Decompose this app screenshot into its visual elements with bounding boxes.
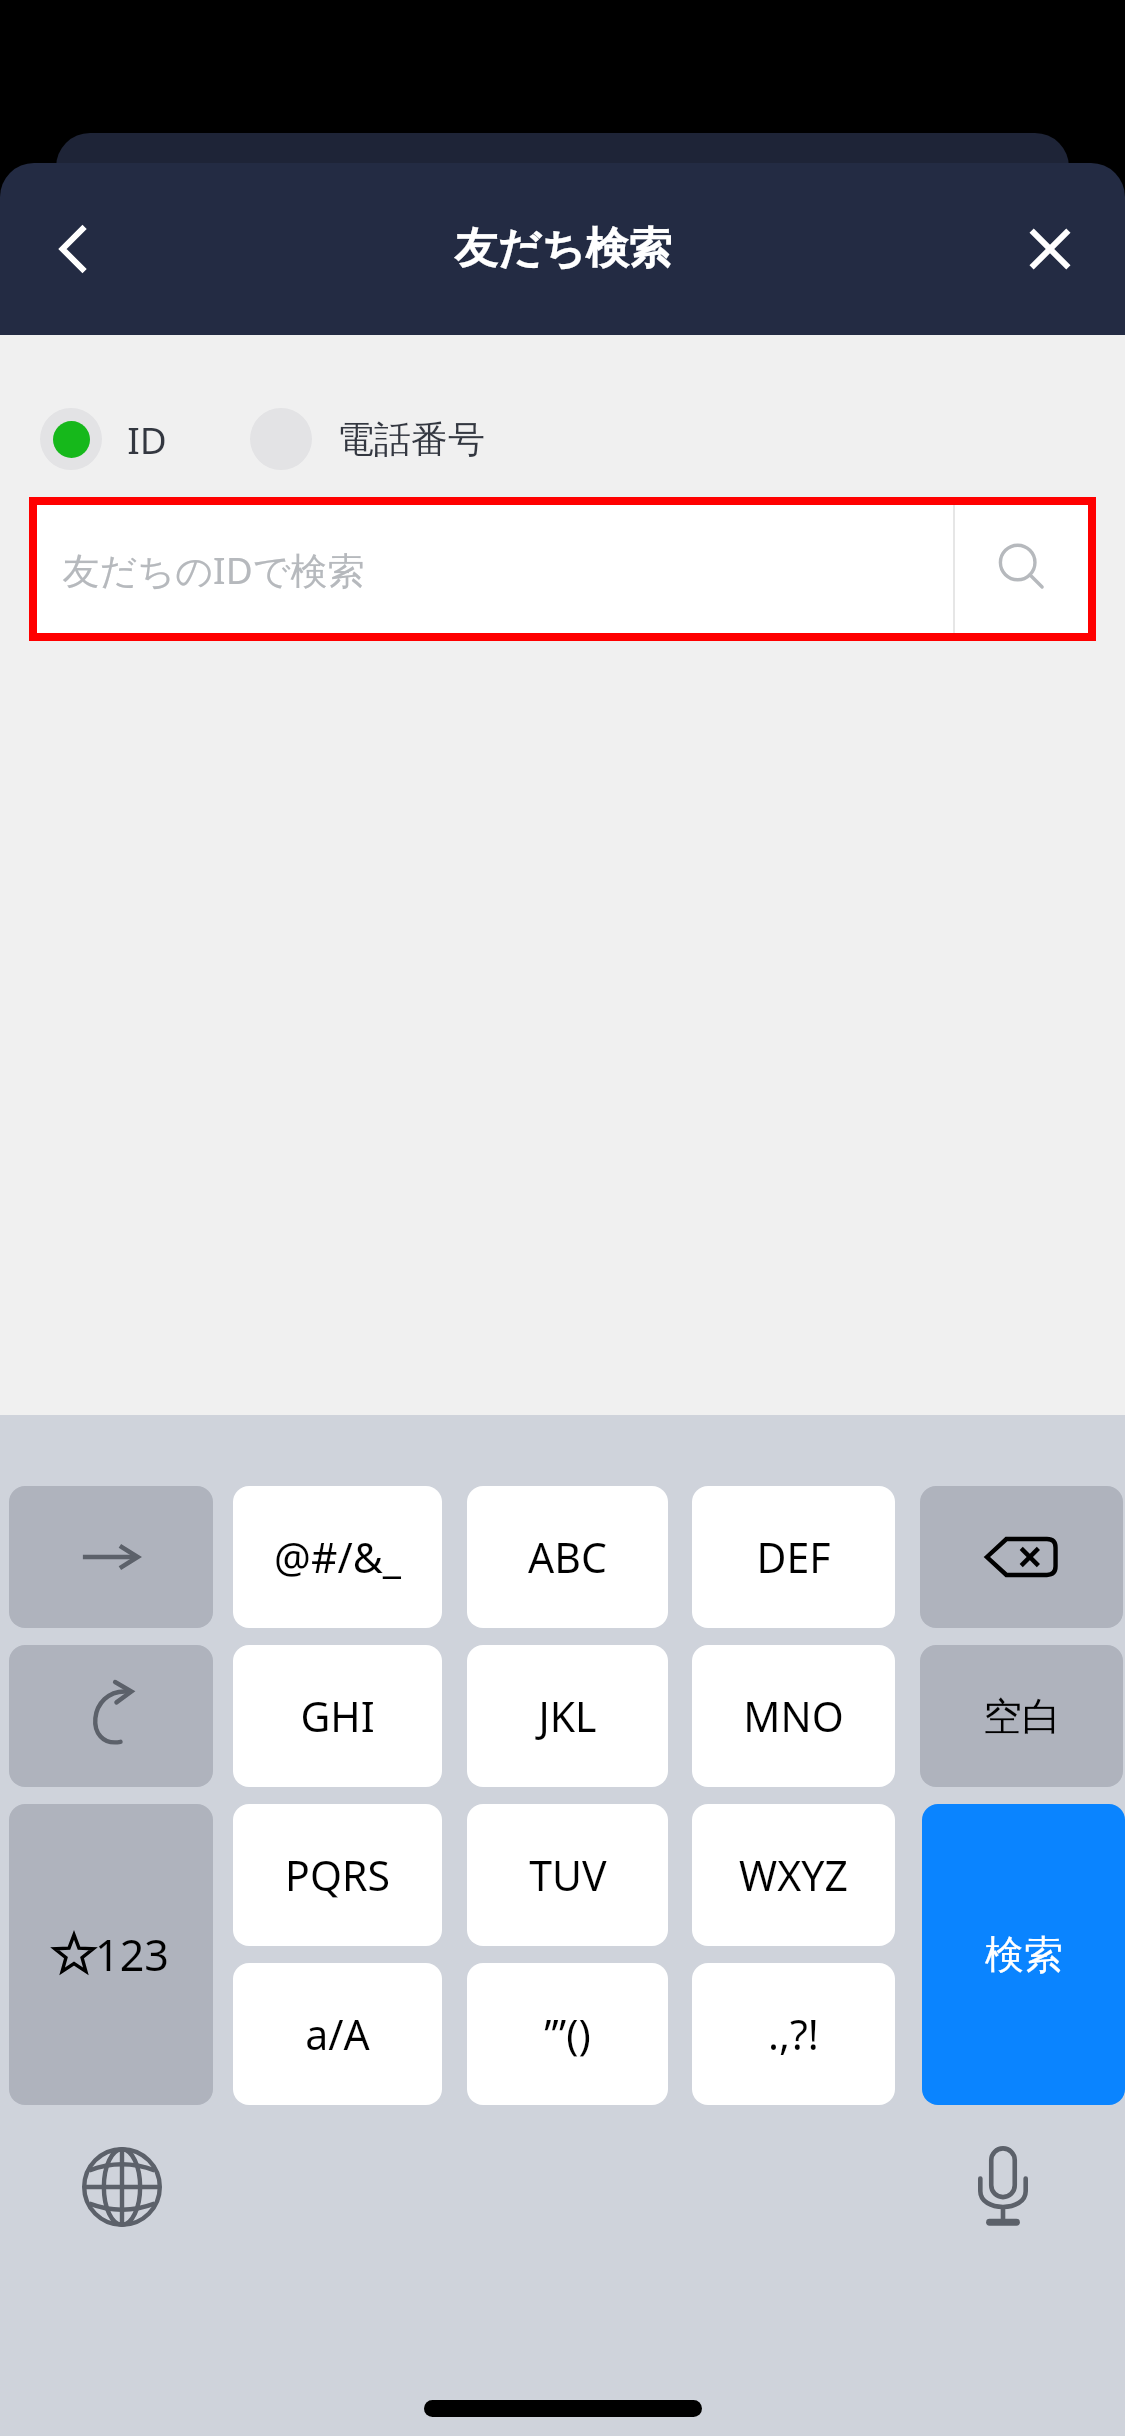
button[interactable]: 電話番号	[250, 408, 485, 470]
button[interactable]: ’”()	[467, 1963, 668, 2105]
button[interactable]: DEF	[692, 1486, 895, 1628]
staticText: 友だち検索	[454, 222, 672, 276]
button[interactable]: .,?!	[692, 1963, 895, 2105]
staticText: a/A	[305, 2006, 370, 2062]
staticText: 検索	[985, 1930, 1063, 1979]
staticText: ’”()	[544, 2006, 591, 2062]
staticText: JKL	[538, 1688, 597, 1744]
button[interactable]: MNO	[692, 1645, 895, 1787]
staticText: ABC	[528, 1529, 607, 1585]
button[interactable]: Back	[28, 202, 122, 296]
button[interactable]: Voice input	[951, 2135, 1055, 2239]
button[interactable]: 空白	[920, 1645, 1123, 1787]
button[interactable]: WXYZ	[692, 1804, 895, 1946]
button[interactable]: Search	[955, 505, 1088, 633]
button[interactable]: JKL	[467, 1645, 668, 1787]
staticText: MNO	[743, 1688, 844, 1744]
button[interactable]: Backspace	[920, 1486, 1123, 1628]
button[interactable]: 123	[9, 1804, 213, 2105]
staticText: GHI	[300, 1688, 375, 1744]
staticText: DEF	[756, 1529, 831, 1585]
staticText: 友だちのIDで検索	[62, 544, 365, 595]
button[interactable]: Next character	[9, 1486, 213, 1628]
staticText: .,?!	[768, 2006, 819, 2062]
button[interactable]: 友だちのIDで検索	[37, 505, 1088, 633]
button[interactable]: PQRS	[233, 1804, 442, 1946]
staticText: @#/&_	[274, 1529, 401, 1585]
staticText: 空白	[983, 1692, 1061, 1741]
staticText: 123	[95, 1925, 169, 1984]
button[interactable]: ABC	[467, 1486, 668, 1628]
button[interactable]: ID	[40, 408, 167, 470]
button[interactable]: @#/&_	[233, 1486, 442, 1628]
staticText: PQRS	[285, 1847, 390, 1903]
button[interactable]: GHI	[233, 1645, 442, 1787]
button[interactable]: Close	[1003, 202, 1097, 296]
button[interactable]: Undo	[9, 1645, 213, 1787]
staticText: TUV	[529, 1847, 607, 1903]
staticText: WXYZ	[739, 1847, 848, 1903]
button[interactable]: TUV	[467, 1804, 668, 1946]
button[interactable]: Change keyboard	[70, 2135, 174, 2239]
staticText: ID	[127, 414, 167, 464]
staticText: 電話番号	[337, 416, 485, 463]
button[interactable]: a/A	[233, 1963, 442, 2105]
button[interactable]: 検索	[922, 1804, 1125, 2105]
